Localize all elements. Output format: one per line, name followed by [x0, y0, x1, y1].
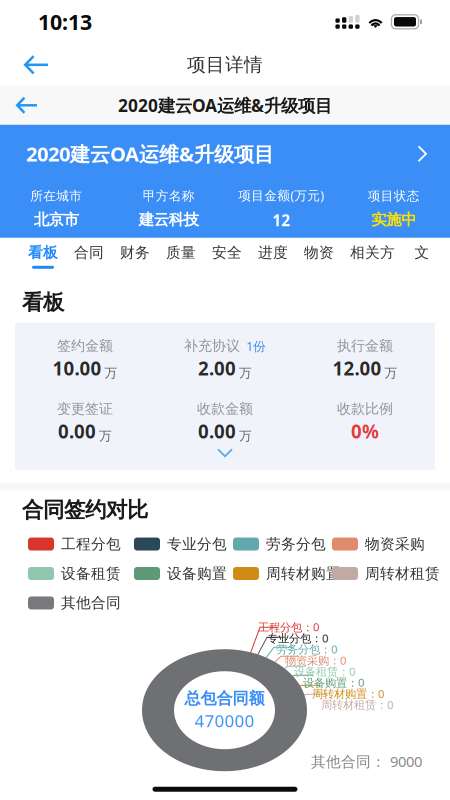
staticText: 设备租赁：0: [294, 664, 355, 679]
staticText: 项目状态: [368, 188, 420, 204]
button[interactable]: Back: [0, 44, 48, 86]
button[interactable]: 相关方: [342, 238, 403, 280]
staticText: 建云科技: [139, 210, 199, 229]
staticText: 其他合同: [61, 594, 121, 612]
staticText: 0%: [351, 419, 379, 444]
staticText: 执行金额: [337, 337, 393, 355]
button[interactable]: 安全: [204, 238, 250, 280]
staticText: 周转材租赁: [365, 564, 440, 583]
staticText: 1份: [246, 337, 266, 355]
staticText: 万: [384, 365, 397, 381]
staticText: 万: [239, 365, 252, 381]
staticText: 甲方名称: [143, 188, 195, 204]
staticText: 变更签证: [57, 400, 113, 418]
staticText: 12.00: [332, 356, 381, 381]
staticText: 物资采购：0: [285, 652, 346, 668]
button[interactable]: 文: [403, 238, 441, 280]
button[interactable]: 物资: [296, 238, 342, 280]
button[interactable]: Back: [0, 86, 37, 125]
staticText: 0.00: [198, 419, 236, 444]
staticText: 签约金额: [57, 337, 113, 355]
staticText: 合同: [74, 243, 104, 262]
button[interactable]: 合同: [66, 238, 112, 280]
staticText: 2020建云OA运维&升级项目: [26, 140, 274, 167]
staticText: 相关方: [350, 243, 395, 262]
staticText: 物资: [304, 243, 334, 262]
staticText: 0.00: [58, 419, 96, 444]
staticText: 质量: [166, 243, 196, 262]
staticText: 10.00: [52, 356, 101, 381]
staticText: 2.00: [198, 356, 236, 381]
staticText: 设备购置: [167, 564, 227, 583]
staticText: 劳务分包: [266, 535, 326, 553]
staticText: 所在城市: [30, 188, 82, 204]
staticText: 周转材购置: [266, 564, 341, 583]
staticText: 看板: [22, 289, 64, 316]
staticText: 其他合同： 9000: [311, 751, 422, 771]
button[interactable]: 质量: [158, 238, 204, 280]
staticText: 专业分包: [167, 535, 227, 553]
staticText: 补充协议: [184, 337, 240, 355]
staticText: 收款金额: [197, 400, 253, 418]
staticText: 看板: [28, 243, 58, 262]
button[interactable]: 财务: [112, 238, 158, 280]
staticText: 专业分包：0: [267, 630, 328, 646]
staticText: 项目详情: [187, 53, 263, 76]
staticText: 工程分包：0: [258, 619, 319, 635]
staticText: 合同签约对比: [22, 496, 148, 523]
button[interactable]: 展开: [15, 444, 435, 462]
button[interactable]: 进度: [250, 238, 296, 280]
staticText: 总包合同额: [184, 688, 264, 708]
staticText: 项目金额(万元): [238, 187, 324, 204]
staticText: 劳务分包：0: [276, 641, 337, 657]
staticText: 安全: [212, 243, 242, 262]
button[interactable]: 2020建云OA运维&升级项目: [0, 125, 450, 183]
staticText: 设备购置：0: [303, 675, 364, 690]
staticText: 文: [414, 243, 429, 262]
staticText: 2020建云OA运维&升级项目: [118, 93, 332, 117]
staticText: 470000: [194, 709, 254, 732]
staticText: 进度: [258, 243, 288, 262]
staticText: 设备租赁: [61, 564, 121, 583]
staticText: 物资采购: [365, 535, 425, 553]
staticText: 万: [104, 365, 117, 381]
staticText: 实施中: [371, 210, 416, 229]
staticText: 周转材购置：0: [312, 686, 384, 701]
staticText: 周转材租赁：0: [321, 697, 393, 712]
staticText: 北京市: [34, 210, 79, 229]
button[interactable]: 看板: [20, 238, 66, 280]
staticText: 万: [239, 428, 252, 444]
staticText: 10:13: [38, 7, 92, 36]
staticText: 收款比例: [337, 400, 393, 418]
staticText: 财务: [120, 243, 150, 262]
staticText: 12: [272, 210, 290, 231]
staticText: 万: [99, 428, 112, 444]
staticText: 工程分包: [61, 535, 121, 553]
